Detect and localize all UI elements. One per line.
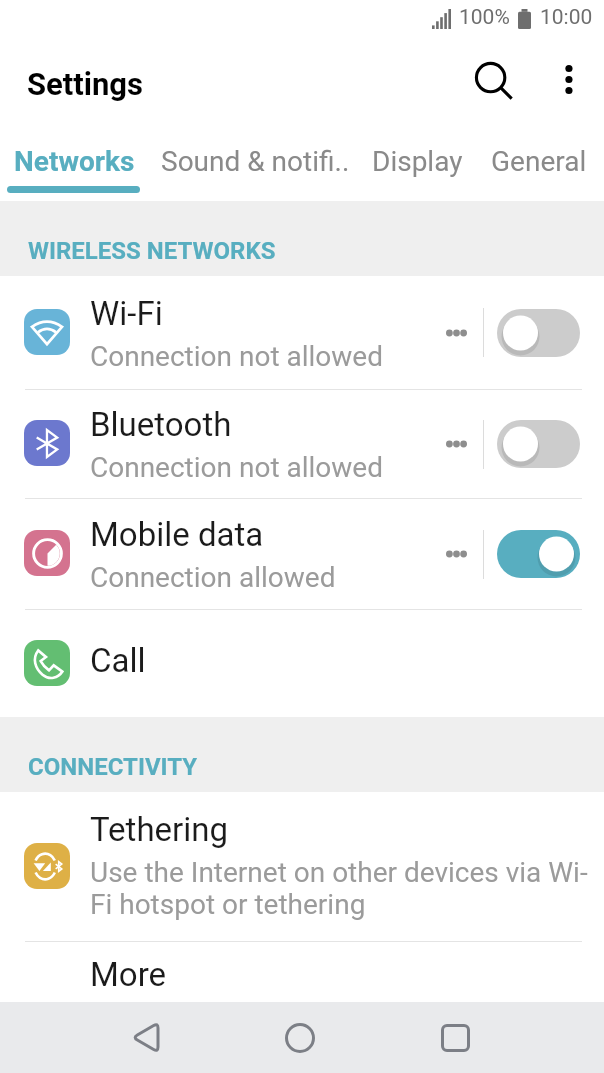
button[interactable]: Mobile data options <box>445 527 467 581</box>
button[interactable]: Wi-Fi <box>0 276 604 389</box>
button[interactable]: Back <box>106 1002 184 1073</box>
staticText: Bluetooth <box>90 405 232 444</box>
button[interactable]: Display <box>362 130 473 186</box>
staticText: WIRELESS NETWORKS <box>28 237 276 265</box>
button[interactable]: Recents <box>416 1002 494 1073</box>
button[interactable]: Wi-Fi options <box>445 306 467 360</box>
button[interactable]: More <box>0 942 604 1002</box>
button[interactable]: Bluetooth options <box>445 417 467 471</box>
button[interactable]: Wi-Fi toggle <box>484 303 592 363</box>
button[interactable]: Mobile data toggle <box>484 524 592 584</box>
staticText: General <box>491 145 587 178</box>
staticText: Connection not allowed <box>90 340 384 373</box>
staticText: Mobile data <box>90 515 264 554</box>
staticText: More <box>90 955 167 994</box>
button[interactable]: Bluetooth toggle <box>484 414 592 474</box>
staticText: Call <box>90 641 146 680</box>
staticText: CONNECTIVITY <box>28 753 198 781</box>
button[interactable]: Bluetooth <box>0 390 604 498</box>
staticText: Connection not allowed <box>90 451 384 484</box>
staticText: Settings <box>27 66 144 102</box>
button[interactable]: Search <box>459 46 535 122</box>
staticText: Wi-Fi <box>90 294 163 333</box>
button[interactable]: Call <box>0 610 604 717</box>
staticText: Use the Internet on other devices via Wi… <box>90 856 588 921</box>
button[interactable]: Home <box>261 1002 339 1073</box>
button[interactable]: Mobile data <box>0 499 604 609</box>
button[interactable]: General <box>473 130 604 186</box>
button[interactable]: Sound & notifi.. <box>148 130 362 186</box>
staticText: Tethering <box>90 810 229 849</box>
staticText: Display <box>372 145 463 178</box>
staticText: 10:00 <box>540 5 593 30</box>
staticText: Networks <box>14 145 135 178</box>
button[interactable]: Networks <box>0 130 148 186</box>
staticText: Sound & notifi.. <box>161 145 350 178</box>
button[interactable]: More options <box>535 46 604 122</box>
staticText: 100% <box>459 5 510 30</box>
staticText: Connection allowed <box>90 561 336 594</box>
button[interactable]: Tethering <box>0 792 604 941</box>
